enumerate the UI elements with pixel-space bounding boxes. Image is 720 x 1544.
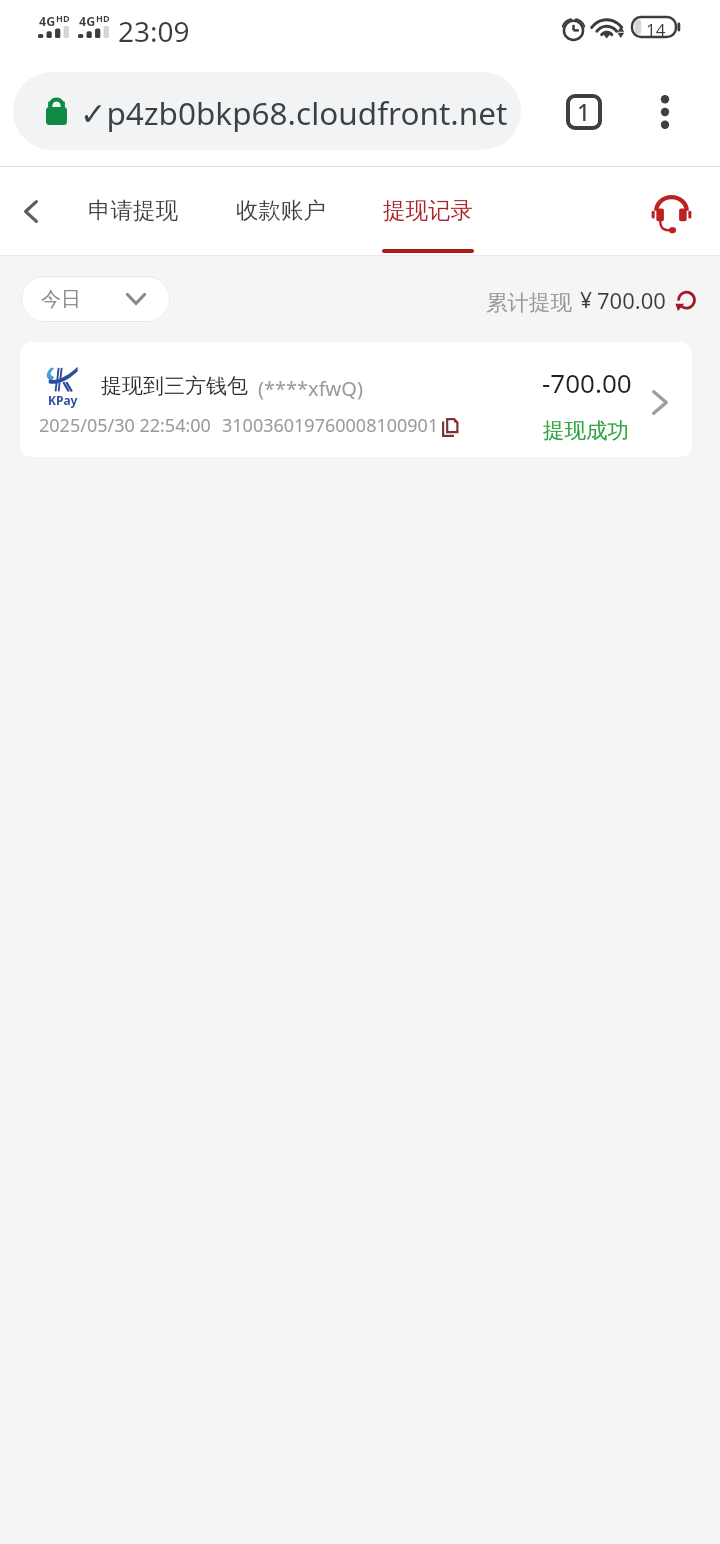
button[interactable]: Customer service bbox=[643, 186, 699, 242]
staticText: KPay bbox=[48, 392, 78, 408]
staticText: 累计提现 bbox=[486, 289, 572, 316]
staticText: 提现到三方钱包 bbox=[101, 373, 248, 399]
button[interactable]: Back bbox=[1, 181, 61, 241]
staticText: HD bbox=[96, 12, 110, 24]
staticText: 14 bbox=[646, 18, 666, 38]
staticText: 提现成功 bbox=[543, 417, 629, 444]
button[interactable]: KPay bbox=[20, 342, 692, 457]
button[interactable]: More options bbox=[637, 84, 693, 140]
button[interactable]: Copy bbox=[442, 418, 459, 437]
staticText: ¥ bbox=[580, 286, 593, 315]
staticText: 700.00 bbox=[597, 285, 666, 315]
staticText: 23:09 bbox=[118, 12, 190, 50]
button[interactable]: 申请提现 bbox=[73, 170, 193, 254]
staticText: 4G bbox=[79, 13, 96, 30]
button[interactable]: 今日 bbox=[21, 276, 170, 322]
staticText: 收款账户 bbox=[236, 196, 326, 224]
staticText: 4G bbox=[39, 13, 56, 30]
button[interactable]: 提现记录 bbox=[368, 170, 488, 254]
staticText: ✓p4zb0bkp68.cloudfront.net bbox=[80, 91, 508, 134]
button[interactable]: ✓p4zb0bkp68.cloudfront.net bbox=[13, 72, 521, 150]
button[interactable]: 收款账户 bbox=[221, 170, 341, 254]
staticText: 今日 bbox=[41, 287, 81, 312]
staticText: 310036019760008100901 bbox=[222, 413, 439, 438]
staticText: 1 bbox=[577, 96, 591, 127]
staticText: 2025/05/30 22:54:00 bbox=[39, 413, 211, 438]
staticText: 申请提现 bbox=[88, 196, 178, 224]
staticText: -700.00 bbox=[542, 365, 632, 400]
staticText: (****xfwQ) bbox=[258, 375, 363, 402]
staticText: 提现记录 bbox=[383, 196, 473, 224]
button[interactable]: Tabs bbox=[556, 84, 612, 140]
staticText: HD bbox=[56, 12, 70, 24]
button[interactable]: Refresh bbox=[672, 288, 698, 314]
